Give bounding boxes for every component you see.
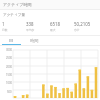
button[interactable]: 50,2105 [74,21,98,32]
button[interactable]: 6518 [50,21,74,32]
button[interactable]: 1 [2,21,26,32]
staticText: 1500 [6,73,12,77]
button[interactable]: アクティブ時間 [0,0,100,9]
staticText: 時間 [30,38,39,43]
staticText: 合計 [74,28,80,32]
staticText: 6518 [50,21,61,27]
staticText: 日数 [2,28,8,32]
staticText: 平均歩 [26,28,35,32]
staticText: 2000 [6,65,12,69]
staticText: 338 [26,21,34,27]
button[interactable]: 日 [0,36,22,44]
staticText: アクティブ時間 [3,2,32,7]
button[interactable]: 338 [26,21,50,32]
staticText: アクティブ量 [3,13,25,18]
staticText: 1000 [6,81,12,85]
staticText: 最大 [50,28,56,32]
staticText: 3000 [6,48,12,52]
staticText: 1 [2,21,5,27]
button[interactable]: 時間 [22,36,46,44]
staticText: 50,2105 [74,21,91,27]
staticText: 2500 [6,56,12,60]
staticText: 日 [9,38,14,43]
staticText: 500 [7,90,12,94]
